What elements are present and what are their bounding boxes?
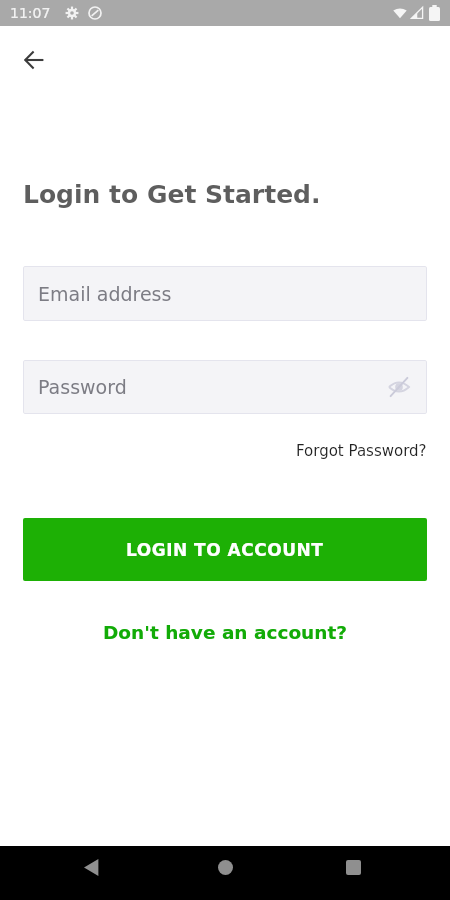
button[interactable]: Forgot Password? bbox=[296, 442, 427, 459]
staticText: LOGIN TO ACCOUNT bbox=[126, 540, 324, 560]
button[interactable]: Email address bbox=[23, 266, 427, 321]
button[interactable] bbox=[386, 374, 412, 400]
staticText: 11:07 bbox=[10, 5, 51, 21]
staticText: Password bbox=[38, 376, 127, 398]
button[interactable]: Don't have an account? bbox=[103, 622, 348, 644]
staticText: Login to Get Started. bbox=[23, 180, 321, 209]
button[interactable] bbox=[14, 40, 54, 80]
button[interactable]: LOGIN TO ACCOUNT bbox=[23, 518, 427, 581]
button[interactable]: Password bbox=[23, 360, 427, 414]
button[interactable] bbox=[331, 845, 375, 889]
button[interactable] bbox=[203, 845, 247, 889]
button[interactable] bbox=[69, 845, 113, 889]
staticText: Email address bbox=[38, 283, 172, 305]
